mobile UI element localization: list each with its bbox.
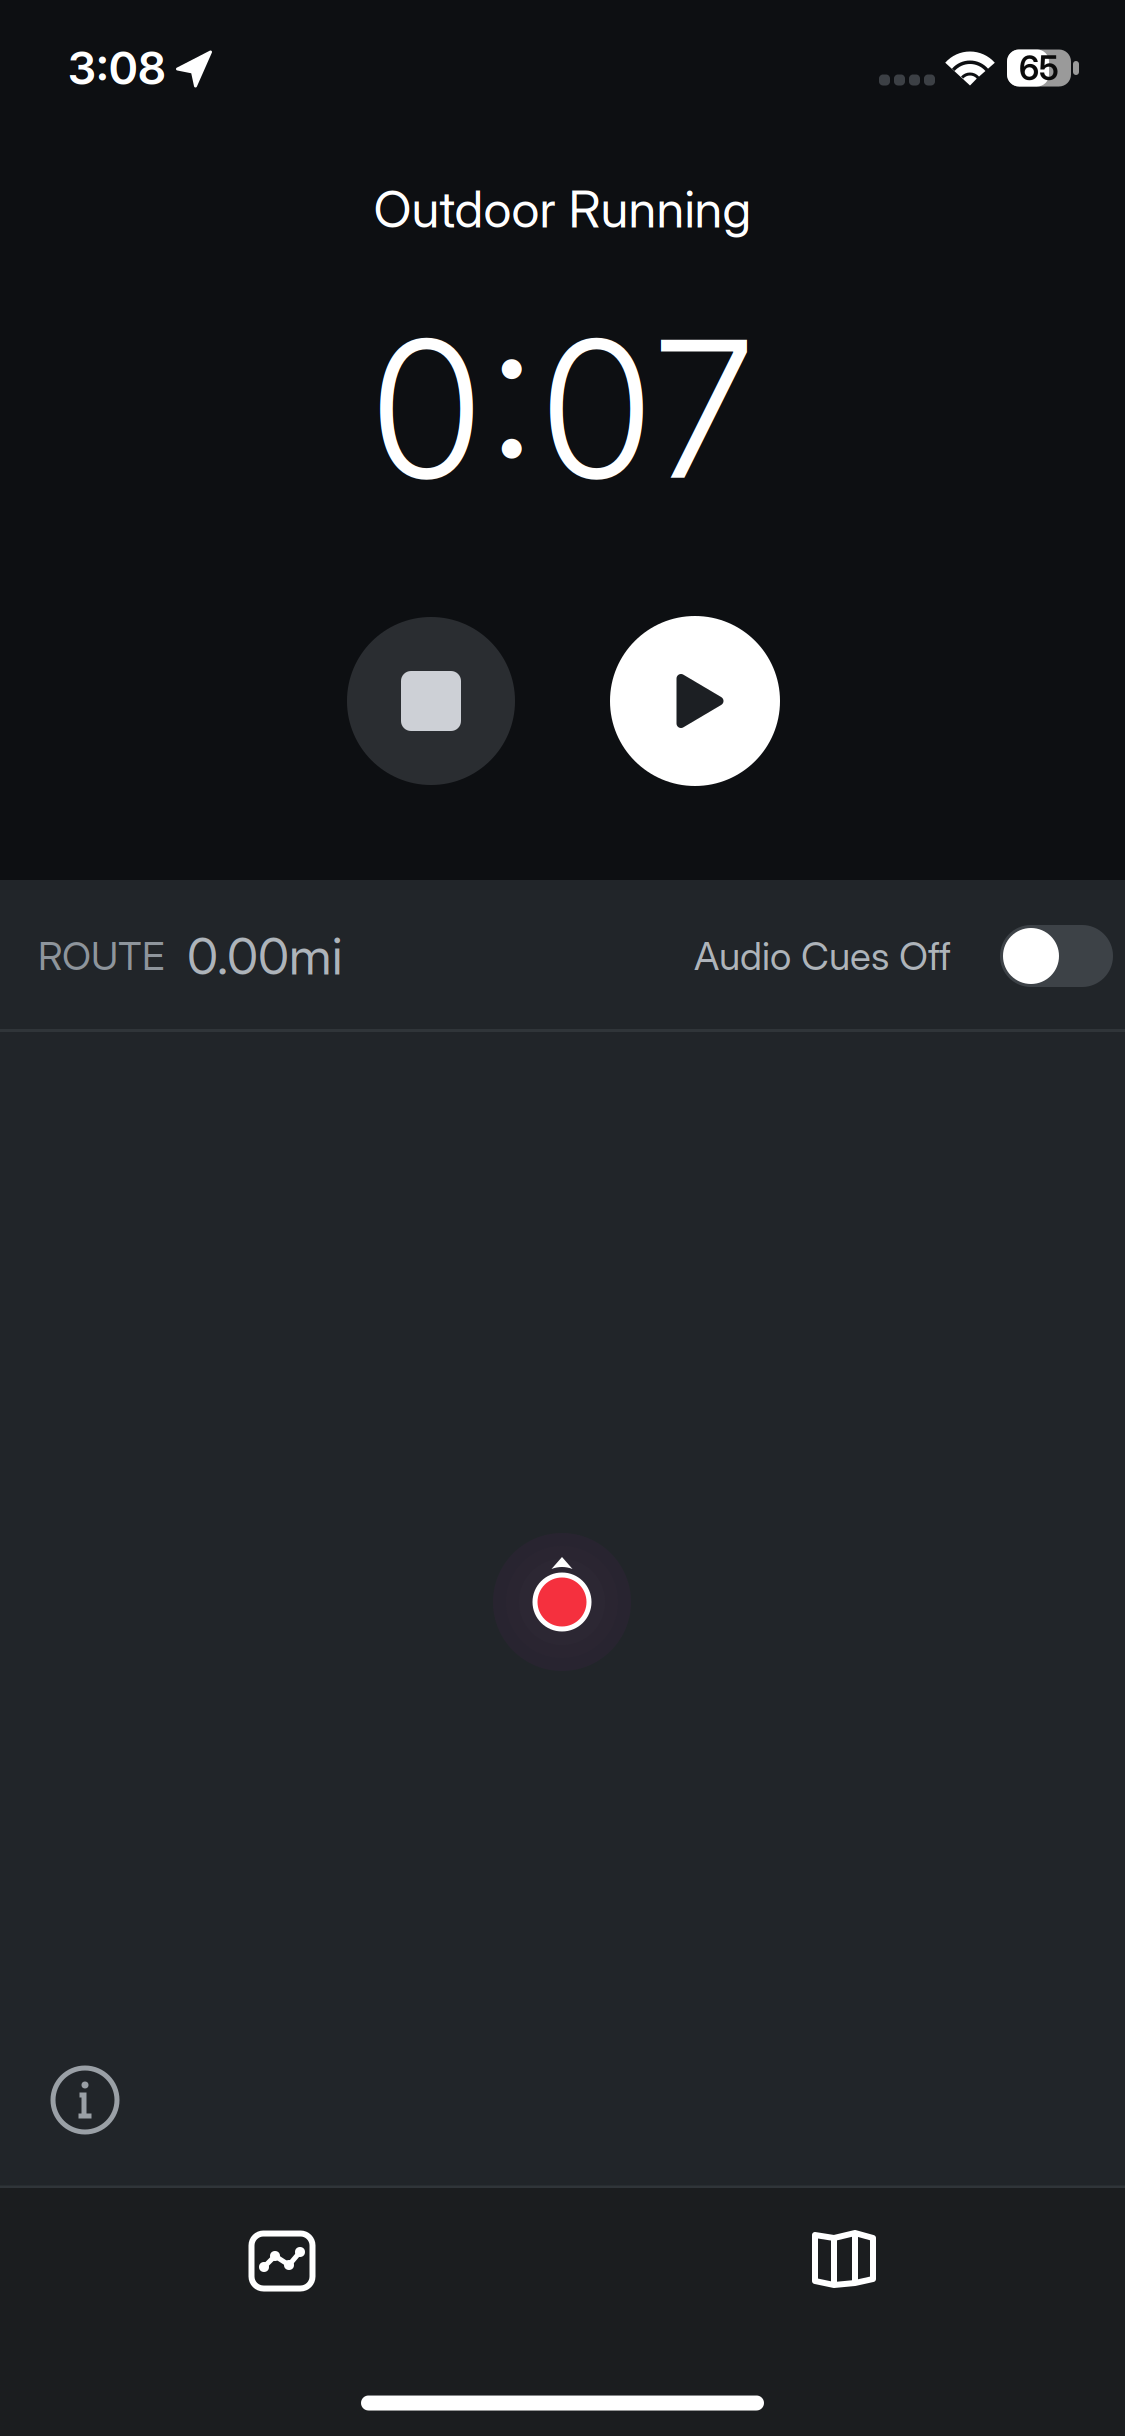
button[interactable]: Stop workout <box>347 617 515 785</box>
staticText: 0.00mi <box>187 925 342 987</box>
staticText: 65 <box>1019 48 1059 88</box>
staticText: 0:07 <box>368 294 757 524</box>
button[interactable]: Audio Cues Off <box>694 921 1113 991</box>
staticText: ROUTE <box>38 933 164 979</box>
button[interactable]: Map <box>744 2199 944 2319</box>
button[interactable]: Start workout <box>610 616 780 786</box>
staticText: Outdoor Running <box>373 178 751 240</box>
button[interactable]: Workout info <box>37 2052 133 2148</box>
button[interactable]: Workout stats <box>182 2201 382 2321</box>
staticText: Audio Cues Off <box>694 933 951 979</box>
staticText: 3:08 <box>68 41 166 95</box>
